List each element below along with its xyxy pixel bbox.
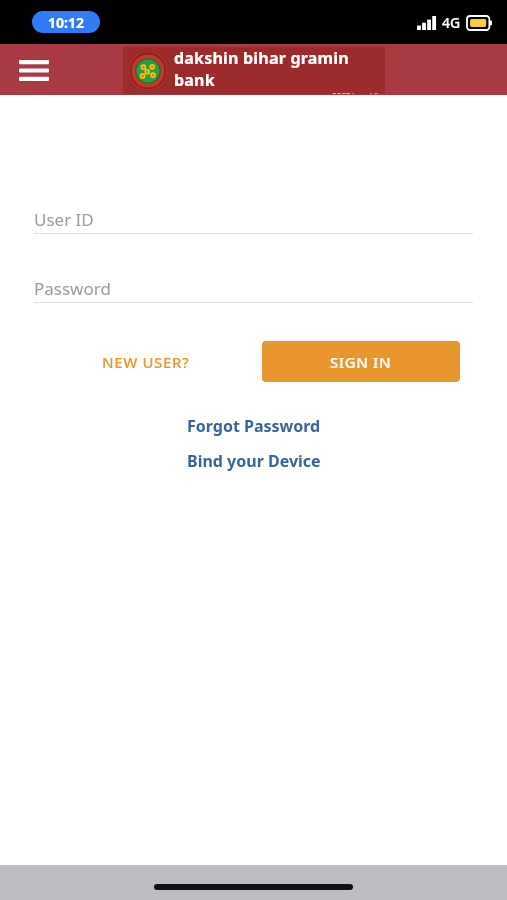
button[interactable]: Bind your Device: [0, 446, 507, 476]
staticText: User ID: [34, 208, 94, 231]
staticText: 10:12: [48, 13, 84, 32]
staticText: dakshin bihar gramin bank: [174, 47, 381, 91]
staticText: ....DBGB in mobile: [174, 91, 381, 94]
staticText: NEW USER?: [102, 352, 190, 372]
button[interactable]: Open navigation menu: [12, 48, 56, 92]
staticText: Forgot Password: [187, 415, 321, 437]
button[interactable]: NEW USER?: [47, 341, 244, 382]
button[interactable]: User ID: [34, 205, 473, 234]
staticText: Bind your Device: [187, 450, 321, 472]
staticText: Password: [34, 277, 111, 300]
button[interactable]: Forgot Password: [0, 411, 507, 441]
staticText: 4G: [442, 13, 461, 32]
button[interactable]: SIGN IN: [262, 341, 460, 382]
button[interactable]: Password: [34, 274, 473, 303]
staticText: SIGN IN: [330, 352, 392, 372]
